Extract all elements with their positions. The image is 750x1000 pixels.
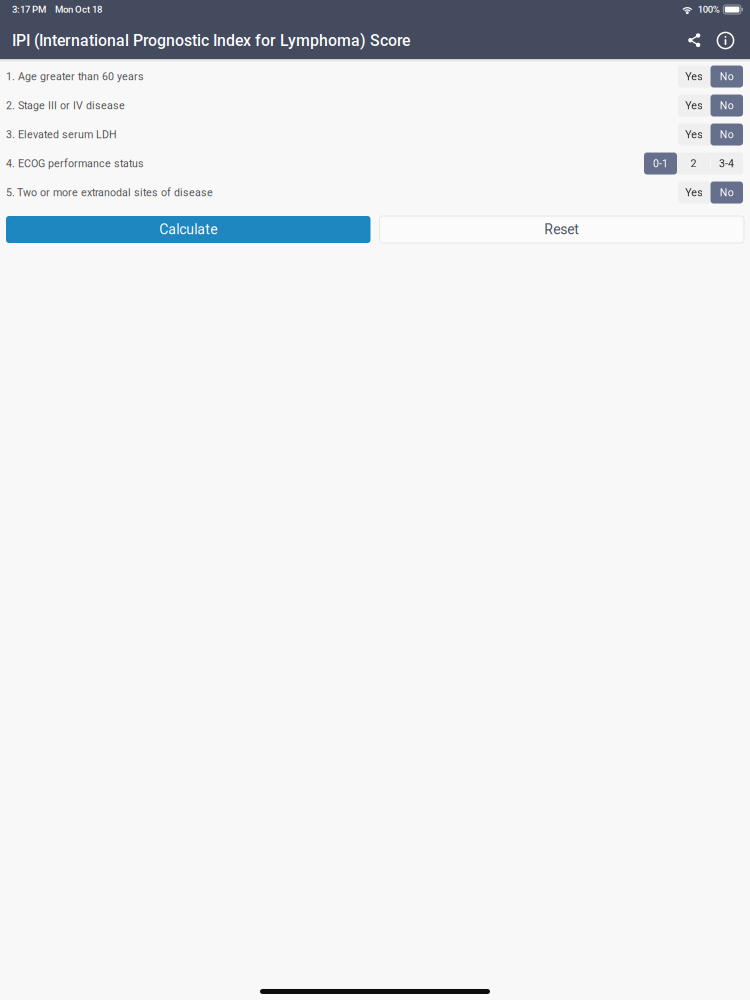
staticText: No <box>720 99 734 112</box>
button[interactable]: No <box>710 94 743 116</box>
staticText: Mon Oct 18 <box>55 4 102 15</box>
staticText: No <box>720 70 734 83</box>
button[interactable]: 0-1 <box>644 152 677 174</box>
staticText: 100% <box>698 4 720 15</box>
staticText: 4. ECOG performance status <box>6 157 144 170</box>
button[interactable]: No <box>710 65 743 87</box>
staticText: 3. Elevated serum LDH <box>6 128 117 141</box>
button[interactable]: Calculate <box>6 216 370 243</box>
button[interactable]: Reset <box>379 216 744 243</box>
button[interactable]: Share <box>679 22 710 59</box>
staticText: 5. Two or more extranodal sites of disea… <box>6 186 213 199</box>
staticText: Reset <box>544 221 579 238</box>
staticText: No <box>720 128 734 141</box>
staticText: 3-4 <box>719 157 734 170</box>
staticText: Yes <box>685 128 703 141</box>
button[interactable]: Yes <box>678 65 710 87</box>
staticText: Yes <box>685 99 703 112</box>
staticText: Yes <box>685 70 703 83</box>
staticText: 1. Age greater than 60 years <box>6 70 144 83</box>
button[interactable]: Yes <box>678 94 710 116</box>
button[interactable]: No <box>710 123 743 145</box>
staticText: Calculate <box>159 221 217 238</box>
staticText: No <box>720 186 734 199</box>
button[interactable]: Information <box>710 22 741 59</box>
staticText: 2 <box>690 157 696 170</box>
staticText: 3:17 PM <box>12 4 46 15</box>
button[interactable]: Yes <box>678 123 710 145</box>
button[interactable]: 3-4 <box>710 152 743 174</box>
staticText: Yes <box>685 186 703 199</box>
staticText: 2. Stage III or IV disease <box>6 99 125 112</box>
button[interactable]: No <box>710 181 743 203</box>
staticText: IPI (International Prognostic Index for … <box>12 31 410 50</box>
staticText: 0-1 <box>653 157 668 170</box>
button[interactable]: Yes <box>678 181 710 203</box>
button[interactable]: 2 <box>677 152 710 174</box>
